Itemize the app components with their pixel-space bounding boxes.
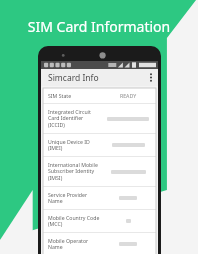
button[interactable]: Mobile Country Code (MCC) bbox=[43, 210, 156, 232]
staticText: Simcard Info bbox=[48, 72, 143, 84]
button[interactable]: SIM State bbox=[43, 88, 156, 103]
staticText: International Mobile Subscriber Identity… bbox=[48, 161, 105, 182]
staticText: Unique Device ID (IMEI) bbox=[48, 138, 105, 152]
button[interactable]: International Mobile Subscriber Identity… bbox=[43, 157, 156, 186]
staticText: READY bbox=[120, 92, 137, 99]
button[interactable]: Service Provider Name bbox=[43, 187, 156, 209]
staticText: SIM Card Information bbox=[0, 17, 198, 36]
staticText: Mobile Operator Name bbox=[48, 237, 105, 251]
staticText: Mobile Country Code (MCC) bbox=[48, 214, 105, 228]
staticText: SIM State bbox=[48, 92, 105, 99]
staticText: Service Provider Name bbox=[48, 191, 105, 205]
button[interactable]: Integrated Circuit Card Identifier (ICCI… bbox=[43, 104, 156, 133]
staticText: Integrated Circuit Card Identifier (ICCI… bbox=[48, 108, 105, 129]
button[interactable]: Mobile Operator Name bbox=[43, 233, 156, 254]
button[interactable]: Unique Device ID (IMEI) bbox=[43, 134, 156, 156]
button[interactable]: More options bbox=[143, 69, 158, 86]
